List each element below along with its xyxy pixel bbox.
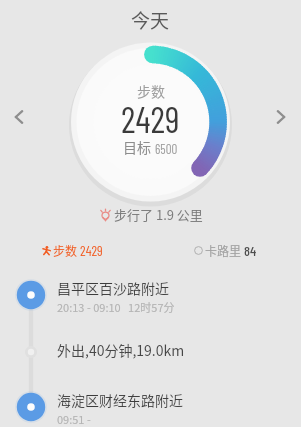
staticText: 6500 [155,141,178,157]
staticText: 09:51 - [57,411,91,427]
staticText: 目标 [123,137,155,157]
staticText: 步行了 1.9 公里 [114,205,203,224]
staticText: 2429 [121,97,180,140]
staticText: 20:13 - 09:10 12时57分 [57,299,175,315]
button[interactable]: Previous day [3,101,35,133]
staticText: 84 [244,242,257,259]
button[interactable]: 海淀区财经东路附近 [57,390,183,427]
button[interactable]: Next day [265,101,297,133]
staticText: 昌平区百沙路附近 [57,278,169,298]
staticText: 海淀区财经东路附近 [57,390,183,410]
staticText: 2429 [80,242,103,259]
staticText: 外出,40分钟,19.0km [57,340,185,360]
staticText: 步数 [137,81,165,101]
staticText: 卡路里 [205,242,244,259]
button[interactable]: 昌平区百沙路附近 [57,278,175,315]
staticText: 步数 [53,242,80,259]
staticText: 今天 [131,6,170,34]
button[interactable]: 外出,40分钟,19.0km [57,340,185,360]
